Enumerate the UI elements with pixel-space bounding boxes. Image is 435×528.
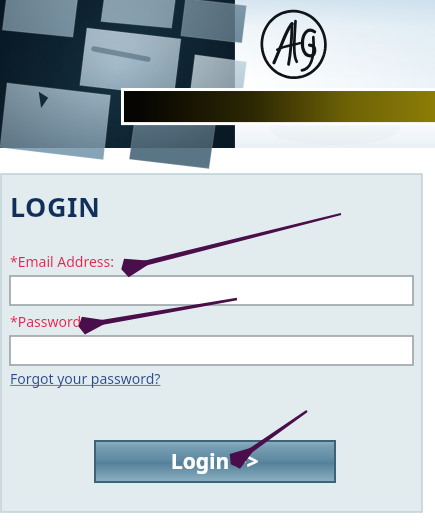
button[interactable]: Login >> (95, 441, 335, 482)
staticText: Login >> (171, 447, 259, 476)
staticText: LOGIN (10, 188, 101, 225)
button[interactable] (10, 336, 413, 365)
staticText: *Email Address: (10, 252, 115, 271)
button[interactable] (10, 276, 413, 305)
button[interactable]: Forgot your password? (10, 369, 161, 388)
staticText: *Password: (10, 312, 85, 331)
